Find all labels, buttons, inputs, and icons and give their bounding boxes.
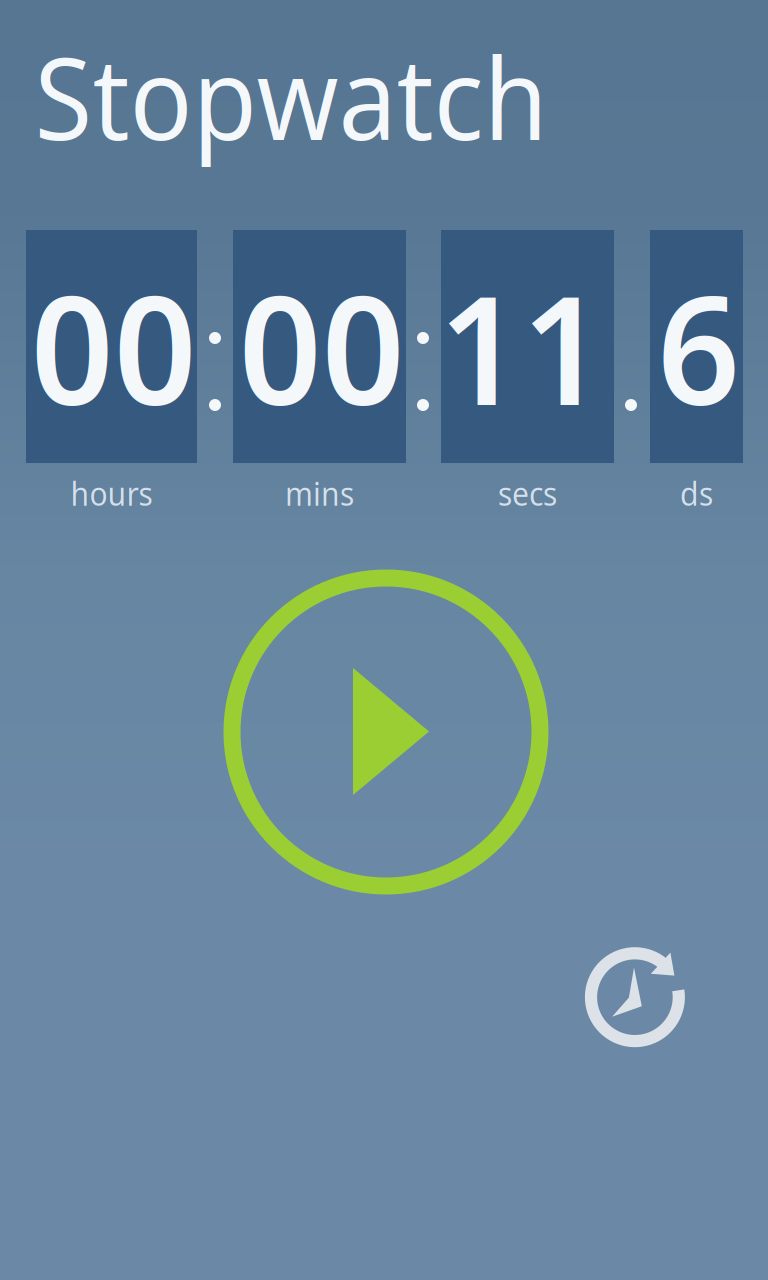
staticText: mins: [285, 471, 354, 515]
staticText: 11: [438, 244, 604, 449]
staticText: hours: [70, 471, 152, 515]
button[interactable]: Reset: [0, 0, 768, 1280]
staticText: 00: [30, 244, 196, 449]
staticText: 00: [238, 244, 404, 449]
staticText: ds: [680, 471, 713, 515]
staticText: Stopwatch: [34, 19, 547, 173]
staticText: 6: [657, 244, 740, 449]
staticText: secs: [498, 471, 557, 515]
button[interactable]: Start: [0, 0, 768, 1280]
